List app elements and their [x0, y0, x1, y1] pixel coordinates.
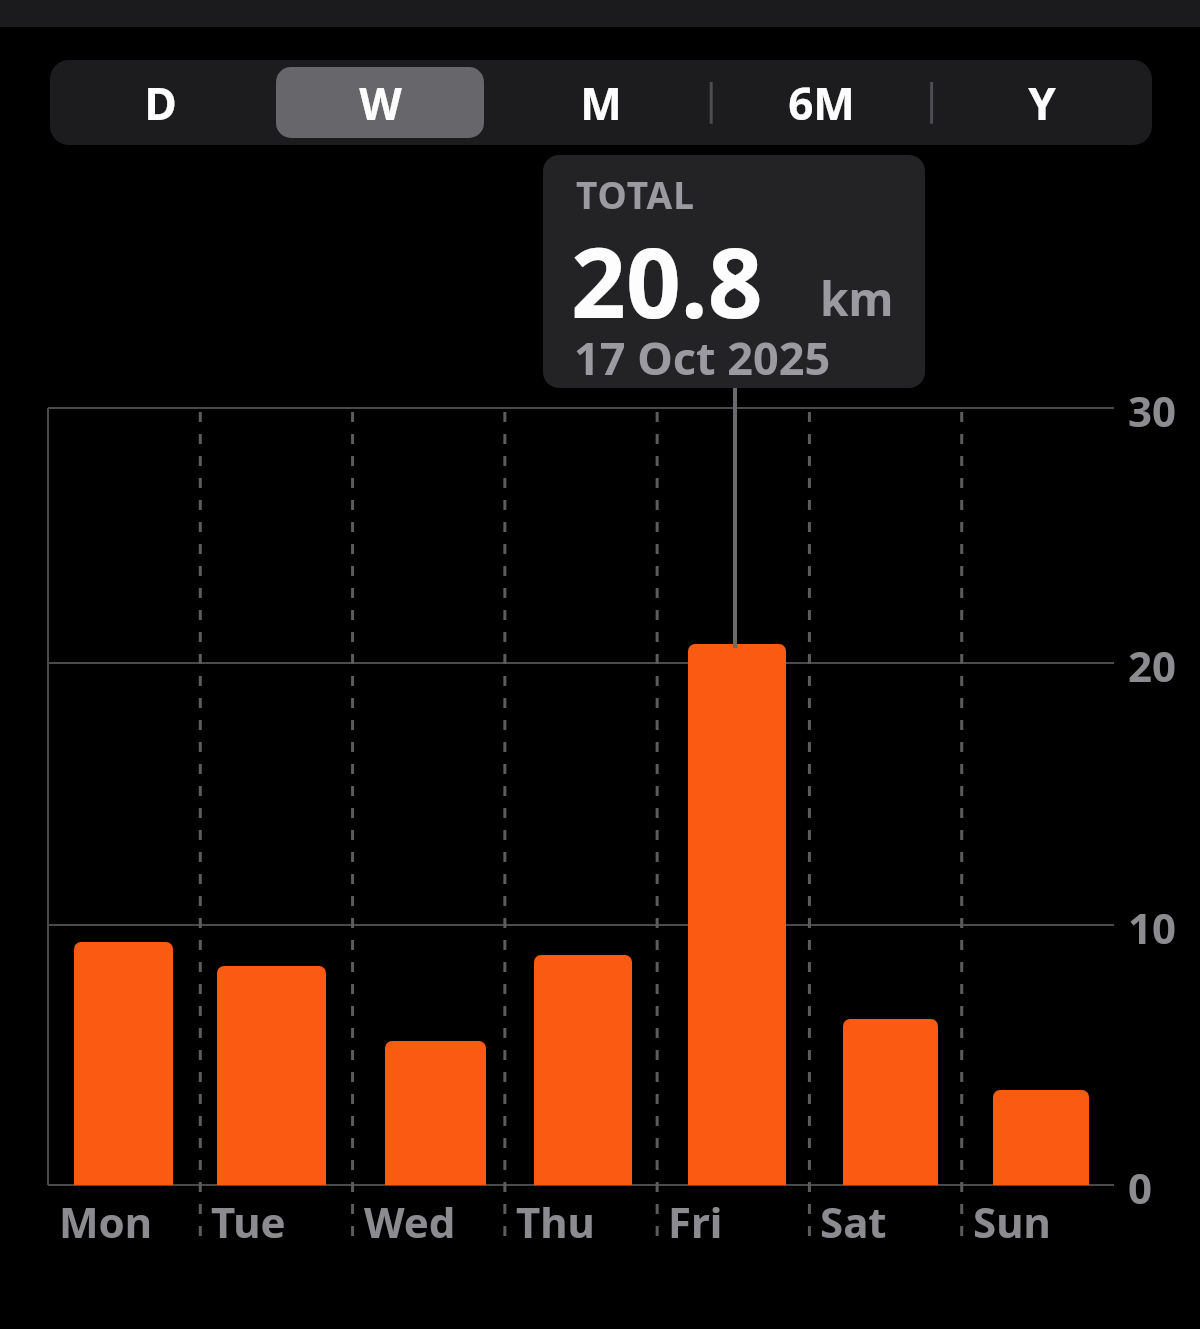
staticText: 20 [1128, 637, 1177, 689]
staticText: Mon [59, 1193, 153, 1250]
staticText: 10 [1128, 899, 1177, 951]
button[interactable]: Total 20.8 km on 17 Oct 2025 [543, 155, 925, 388]
staticText: W [359, 73, 402, 133]
staticText: D [144, 73, 177, 133]
button[interactable]: Y [932, 60, 1152, 145]
staticText: 20.8 [571, 215, 763, 346]
staticText: Thu [516, 1193, 595, 1250]
staticText: Fri [668, 1193, 723, 1250]
button[interactable]: D [50, 60, 270, 145]
button[interactable]: W [270, 60, 490, 145]
button[interactable]: Sat [820, 1192, 961, 1250]
staticText: 17 Oct 2025 [574, 327, 831, 388]
staticText: Sun [973, 1193, 1051, 1250]
button[interactable]: Wed [364, 1192, 505, 1250]
staticText: M [580, 73, 622, 133]
button[interactable]: Mon [59, 1192, 200, 1250]
staticText: 0 [1128, 1159, 1153, 1211]
staticText: Y [1028, 73, 1056, 133]
button[interactable]: Tue [211, 1192, 352, 1250]
button[interactable]: Sun [973, 1192, 1114, 1250]
button[interactable]: Thu [516, 1192, 657, 1250]
button[interactable]: 6M [711, 60, 931, 145]
staticText: km [820, 267, 894, 330]
staticText: Wed [364, 1193, 456, 1250]
staticText: 30 [1128, 382, 1177, 434]
staticText: 6M [788, 73, 855, 133]
staticText: Sat [820, 1193, 887, 1250]
staticText: Tue [211, 1193, 286, 1250]
staticText: TOTAL [576, 169, 695, 219]
button[interactable]: Fri [668, 1192, 809, 1250]
button[interactable]: M [491, 60, 711, 145]
